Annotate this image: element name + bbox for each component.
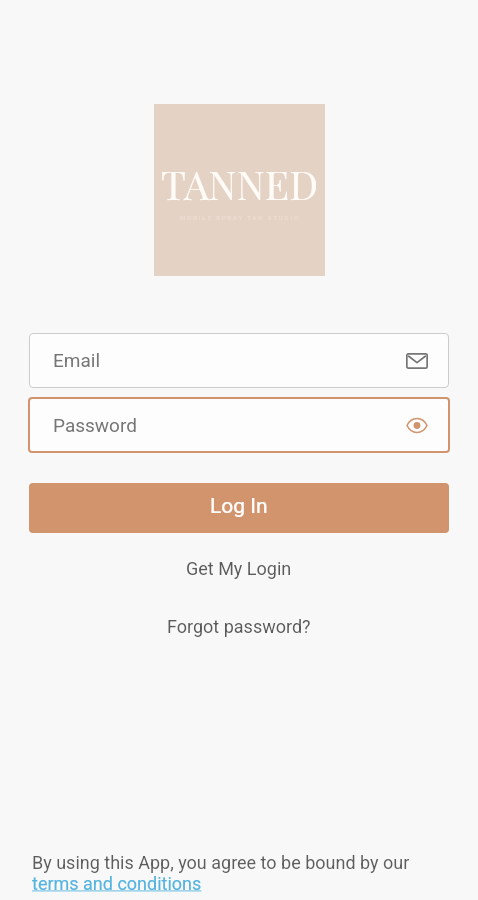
button[interactable]: Get My Login (172, 550, 306, 587)
staticText: Email (53, 349, 406, 371)
button[interactable]: Email (29, 333, 449, 388)
staticText: terms and conditions (32, 873, 202, 894)
button[interactable]: Password (28, 397, 450, 453)
button[interactable]: Show password (396, 408, 450, 443)
staticText: Forgot password? (167, 616, 311, 637)
staticText: TANNED (161, 157, 319, 210)
staticText: Get My Login (186, 558, 292, 579)
staticText: MOBILE SPRAY TAN STUDIO (180, 214, 300, 221)
button[interactable]: Log In (29, 483, 449, 533)
staticText: Password (53, 414, 396, 436)
staticText: Log In (210, 494, 268, 519)
other: Email address (406, 353, 428, 369)
staticText: By using this App, you agree to be bound… (32, 852, 410, 873)
button[interactable]: terms and conditions (32, 873, 202, 894)
button[interactable]: Forgot password? (153, 608, 325, 645)
